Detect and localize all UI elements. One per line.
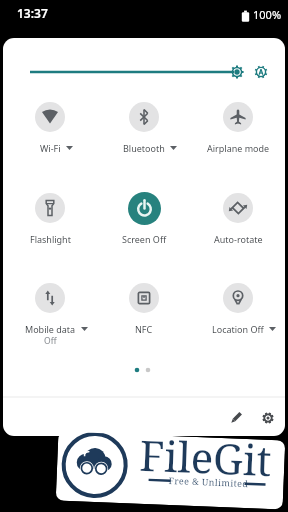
- staticText: Off: [44, 335, 57, 347]
- button[interactable]: Bluetooth: [97, 102, 191, 154]
- button[interactable]: NFC: [97, 283, 191, 335]
- staticText: Flashlight: [30, 233, 71, 245]
- staticText: 13:37: [17, 5, 48, 21]
- button[interactable]: [224, 406, 248, 430]
- staticText: Airplane mode: [207, 142, 270, 154]
- button[interactable]: Screen Off: [97, 192, 191, 245]
- button[interactable]: Auto-rotate: [191, 193, 285, 245]
- button[interactable]: Airplane mode: [191, 102, 285, 154]
- staticText: Screen Off: [122, 233, 167, 245]
- staticText: Mobile data: [25, 323, 76, 335]
- button[interactable]: Wi-Fi: [3, 102, 97, 154]
- button[interactable]: FileGit: [56, 431, 285, 510]
- button[interactable]: Location Off: [191, 283, 285, 335]
- staticText: FileGit: [138, 435, 272, 488]
- staticText: Bluetooth: [123, 142, 165, 154]
- button[interactable]: Mobile data: [3, 283, 97, 347]
- button[interactable]: [256, 406, 280, 430]
- staticText: 100%: [253, 7, 282, 22]
- staticText: Free & Unlimited: [168, 474, 249, 489]
- staticText: NFC: [135, 323, 153, 335]
- staticText: Location Off: [212, 323, 264, 335]
- staticText: Wi-Fi: [40, 142, 61, 154]
- button[interactable]: Flashlight: [3, 193, 97, 245]
- staticText: Auto-rotate: [214, 233, 263, 245]
